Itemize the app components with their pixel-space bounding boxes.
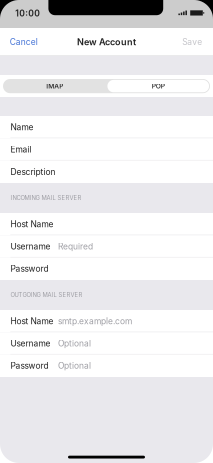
staticText: Optional [58,338,91,349]
button[interactable]: Password [0,355,213,377]
button[interactable]: POP [106,79,210,93]
button[interactable]: IMAP [3,79,106,93]
button[interactable]: Password [0,258,213,280]
staticText: Required [58,241,93,252]
staticText: Email [10,144,31,155]
staticText: Save [182,37,202,47]
staticText: Password [10,361,48,371]
staticText: IMAP [46,82,63,90]
button[interactable]: Username [0,332,213,355]
staticText: Description [10,167,55,177]
staticText: Cancel [10,37,38,47]
staticText: 10:00 [15,8,40,18]
button[interactable]: Host Name [0,310,213,332]
staticText: Optional [58,361,91,371]
button[interactable]: Host Name [0,213,213,235]
staticText: New Account [77,36,136,47]
staticText: Host Name [10,316,53,326]
button[interactable]: Description [0,161,213,183]
staticText: Name [10,122,33,132]
staticText: POP [152,82,165,90]
staticText: Username [10,241,50,252]
staticText: OUTGOING MAIL SERVER [10,291,82,298]
staticText: Host Name [10,219,53,229]
staticText: smtp.example.com [58,316,132,326]
button[interactable]: Cancel [0,28,44,56]
button[interactable]: Email [0,138,213,161]
staticText: Password [10,264,48,274]
button[interactable]: Save [176,28,213,56]
button[interactable]: Username [0,235,213,258]
staticText: Username [10,338,50,349]
staticText: INCOMING MAIL SERVER [10,194,81,201]
button[interactable]: Name [0,116,213,138]
